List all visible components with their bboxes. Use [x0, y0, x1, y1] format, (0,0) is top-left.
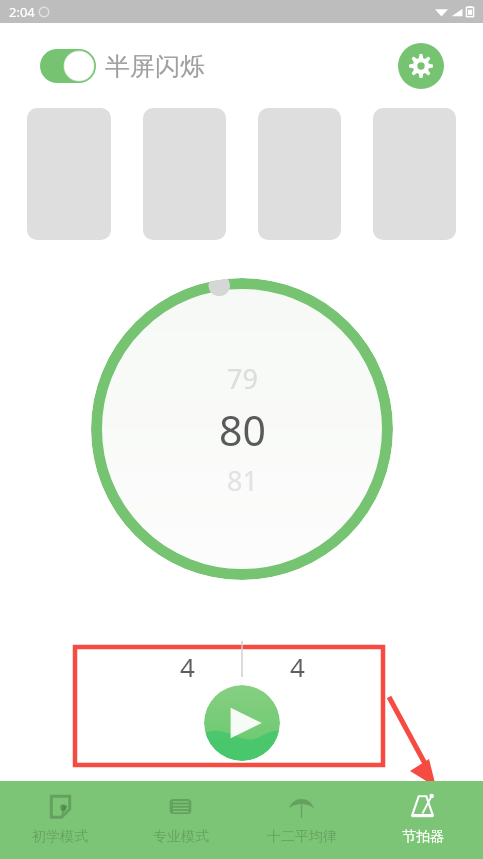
staticText: 4	[290, 649, 305, 684]
staticText: 十二平均律	[267, 828, 337, 846]
staticText: 4	[180, 649, 195, 684]
button[interactable]: Play	[204, 685, 280, 761]
staticText: 81	[227, 462, 258, 499]
staticText: 80	[219, 402, 266, 458]
staticText: 节拍器	[402, 828, 444, 846]
button[interactable]: Tempo dial	[91, 278, 393, 580]
staticText: 初学模式	[32, 828, 88, 846]
staticText: 半屏闪烁	[105, 51, 205, 82]
button[interactable]: 初学模式	[0, 781, 120, 859]
button[interactable]: 十二平均律	[241, 781, 362, 859]
button[interactable]: 专业模式	[120, 781, 241, 859]
button[interactable]: 4	[132, 649, 242, 684]
button[interactable]: 4	[242, 649, 352, 684]
staticText: 79	[227, 360, 258, 397]
staticText: 2:04	[9, 3, 35, 21]
button[interactable]: 半屏闪烁	[40, 49, 205, 83]
button[interactable]: 节拍器	[362, 781, 483, 859]
button[interactable]: Settings	[398, 43, 444, 89]
staticText: 专业模式	[153, 828, 209, 846]
